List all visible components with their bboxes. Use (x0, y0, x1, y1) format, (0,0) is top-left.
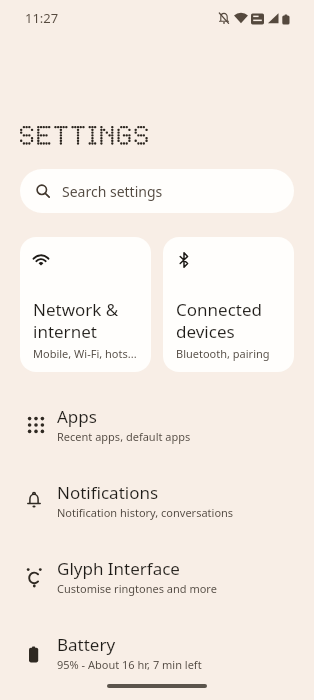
staticText: Network & internet (33, 298, 119, 343)
staticText: Battery (57, 633, 116, 656)
staticText: Notification history, conversations (57, 505, 234, 520)
staticText: Search settings (62, 182, 163, 201)
staticText: Glyph Interface (57, 557, 180, 580)
button[interactable]: Apps (0, 386, 314, 462)
staticText: Apps (57, 405, 97, 428)
staticText: 11:27 (25, 9, 59, 27)
staticText: Notifications (57, 481, 159, 504)
staticText: Recent apps, default apps (57, 429, 191, 444)
staticText: Connected devices (176, 298, 262, 343)
button[interactable]: Notifications (0, 462, 314, 538)
button[interactable]: Connected devices (163, 237, 294, 372)
button[interactable]: Battery (0, 614, 314, 690)
staticText: 95% - About 16 hr, 7 min left (57, 657, 202, 672)
staticText: Bluetooth, pairing (176, 346, 270, 361)
button[interactable]: Network & internet (20, 237, 151, 372)
button[interactable]: Glyph Interface (0, 538, 314, 614)
staticText: Customise ringtones and more (57, 581, 217, 596)
staticText: Mobile, Wi-Fi, hots... (33, 346, 137, 361)
button[interactable]: Search settings (20, 169, 294, 213)
